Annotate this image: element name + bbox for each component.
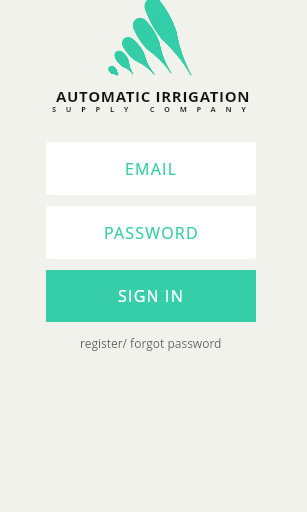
staticText: SUPPLY COMPANY — [52, 104, 256, 114]
button[interactable]: EMAIL — [46, 142, 256, 195]
button[interactable]: register/ forgot password — [80, 335, 222, 351]
button[interactable]: SIGN IN — [46, 270, 256, 322]
staticText: SIGN IN — [118, 285, 185, 307]
button[interactable]: PASSWORD — [46, 206, 256, 259]
staticText: AUTOMATIC IRRIGATION — [56, 86, 251, 102]
staticText: PASSWORD — [104, 222, 199, 244]
staticText: EMAIL — [125, 158, 178, 180]
